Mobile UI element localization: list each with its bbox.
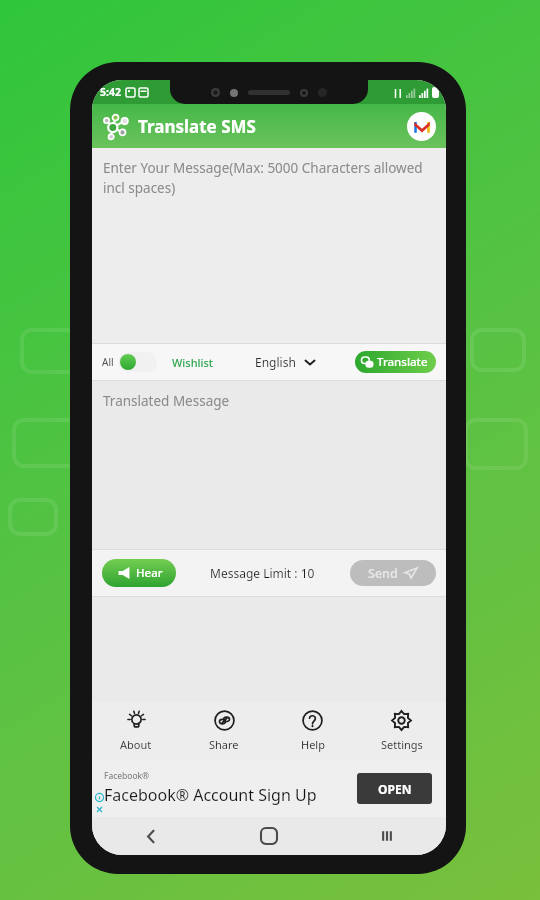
- staticText: Translated Message: [103, 392, 230, 410]
- staticText: OPEN: [378, 781, 412, 797]
- staticText: Share: [209, 737, 239, 752]
- staticText: 5:42: [100, 85, 121, 99]
- button[interactable]: Toggle All or Wishlist: [118, 352, 157, 372]
- button[interactable]: Back: [92, 817, 210, 855]
- button[interactable]: Enter Your Message(Max: 5000 Characters …: [92, 148, 446, 343]
- staticText: Facebook® Account Sign Up: [104, 784, 317, 806]
- button[interactable]: Facebook®: [92, 759, 446, 817]
- staticText: Translate: [377, 354, 428, 370]
- staticText: Settings: [381, 737, 423, 752]
- button[interactable]: Send: [350, 560, 436, 586]
- button[interactable]: Recents: [328, 817, 446, 855]
- button[interactable]: About: [92, 702, 180, 759]
- button[interactable]: Help: [268, 702, 357, 759]
- staticText: About: [120, 737, 152, 752]
- button[interactable]: English: [253, 352, 318, 372]
- button[interactable]: Settings: [357, 702, 446, 759]
- button[interactable]: Wishlist: [170, 353, 216, 372]
- staticText: Facebook®: [104, 770, 150, 782]
- staticText: Hear: [136, 565, 163, 581]
- staticText: English: [255, 354, 296, 370]
- button[interactable]: Gmail: [407, 112, 436, 141]
- staticText: Enter Your Message(Max: 5000 Characters …: [103, 159, 432, 197]
- button[interactable]: OPEN: [357, 773, 432, 804]
- button[interactable]: Share: [180, 702, 268, 759]
- staticText: Translate SMS: [138, 115, 256, 138]
- staticText: Wishlist: [172, 355, 214, 370]
- staticText: All: [102, 355, 114, 369]
- staticText: Help: [301, 737, 325, 752]
- staticText: Send: [368, 565, 398, 582]
- staticText: Message Limit : 10: [210, 565, 315, 581]
- button[interactable]: Translated Message: [92, 381, 446, 549]
- button[interactable]: Home: [210, 817, 328, 855]
- button[interactable]: Hear: [102, 559, 176, 587]
- button[interactable]: Translate: [355, 351, 436, 373]
